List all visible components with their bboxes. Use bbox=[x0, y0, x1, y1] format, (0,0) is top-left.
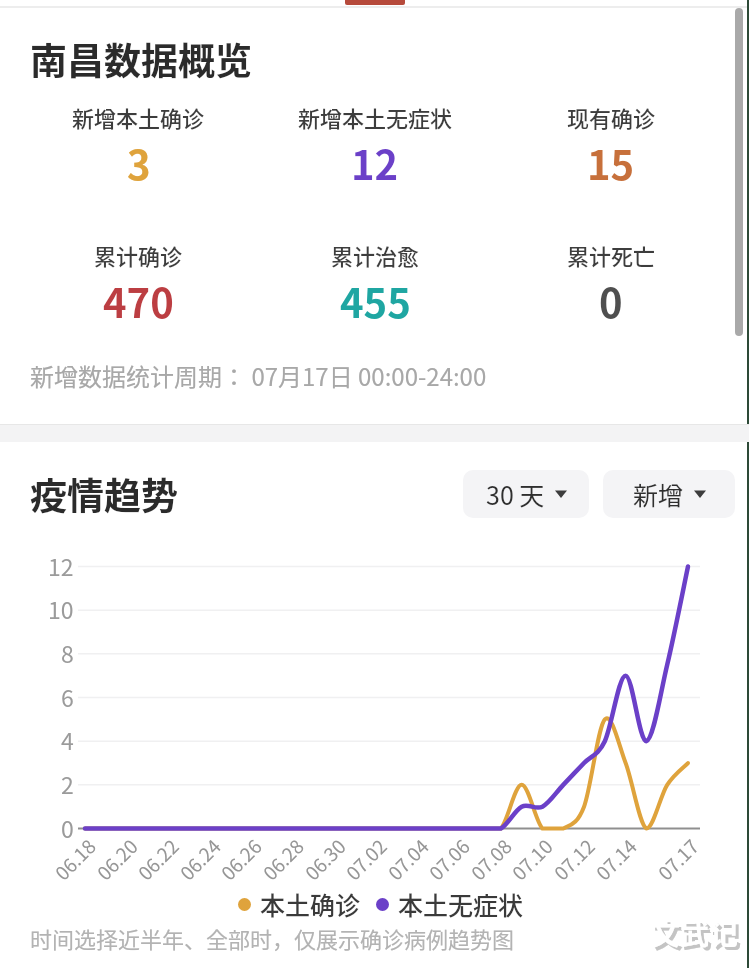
button[interactable]: 本土确诊 bbox=[238, 886, 361, 922]
staticText: 新增本土确诊 bbox=[72, 101, 205, 133]
staticText: 07.04 bbox=[381, 832, 435, 886]
staticText: 现有确诊 bbox=[567, 101, 656, 133]
staticText: 06.24 bbox=[173, 832, 227, 886]
button[interactable]: 本土无症状 bbox=[376, 886, 524, 922]
staticText: 12 bbox=[48, 549, 74, 582]
staticText: 07.12 bbox=[547, 832, 601, 886]
button[interactable]: 30 天 bbox=[463, 470, 589, 518]
staticText: 06.22 bbox=[131, 832, 185, 886]
staticText: 07.14 bbox=[589, 832, 643, 886]
button[interactable]: 新增 bbox=[603, 470, 735, 518]
staticText: 累计死亡 bbox=[567, 239, 656, 271]
staticText: 06.30 bbox=[298, 832, 352, 886]
staticText: 470 bbox=[103, 272, 174, 330]
staticText: 10 bbox=[48, 592, 74, 625]
staticText: 06.28 bbox=[256, 832, 310, 886]
staticText: 文武记 bbox=[654, 914, 742, 956]
staticText: 时间选择近半年、全部时，仅展示确诊病例趋势图 bbox=[30, 922, 515, 954]
staticText: 南昌数据概览 bbox=[30, 32, 252, 86]
staticText: 文武记 bbox=[651, 911, 739, 953]
staticText: 累计治愈 bbox=[331, 239, 420, 271]
staticText: 0 bbox=[599, 272, 623, 330]
staticText: 07.02 bbox=[339, 832, 393, 886]
staticText: 新增数据统计周期： 07月17日 00:00-24:00 bbox=[30, 358, 487, 393]
staticText: 06.26 bbox=[214, 832, 268, 886]
staticText: 0 bbox=[61, 811, 74, 844]
staticText: 07.10 bbox=[505, 832, 559, 886]
staticText: 8 bbox=[61, 636, 74, 669]
staticText: 07.06 bbox=[422, 832, 476, 886]
staticText: 累计确诊 bbox=[94, 239, 183, 271]
staticText: 新增 bbox=[633, 476, 684, 512]
staticText: 本土确诊 bbox=[260, 886, 361, 922]
staticText: 本土无症状 bbox=[398, 886, 524, 922]
staticText: 455 bbox=[340, 272, 411, 330]
staticText: 07.08 bbox=[464, 832, 518, 886]
staticText: 2 bbox=[61, 767, 74, 800]
staticText: 新增本土无症状 bbox=[298, 101, 453, 133]
staticText: 3 bbox=[127, 134, 151, 192]
staticText: 疫情趋势 bbox=[30, 467, 178, 521]
staticText: 15 bbox=[587, 134, 635, 192]
staticText: 6 bbox=[61, 680, 74, 713]
staticText: 06.18 bbox=[48, 832, 102, 886]
staticText: 07.17 bbox=[651, 832, 705, 886]
staticText: 12 bbox=[351, 134, 399, 192]
staticText: 30 天 bbox=[486, 476, 545, 512]
staticText: 4 bbox=[61, 723, 74, 756]
staticText: 06.20 bbox=[90, 832, 144, 886]
